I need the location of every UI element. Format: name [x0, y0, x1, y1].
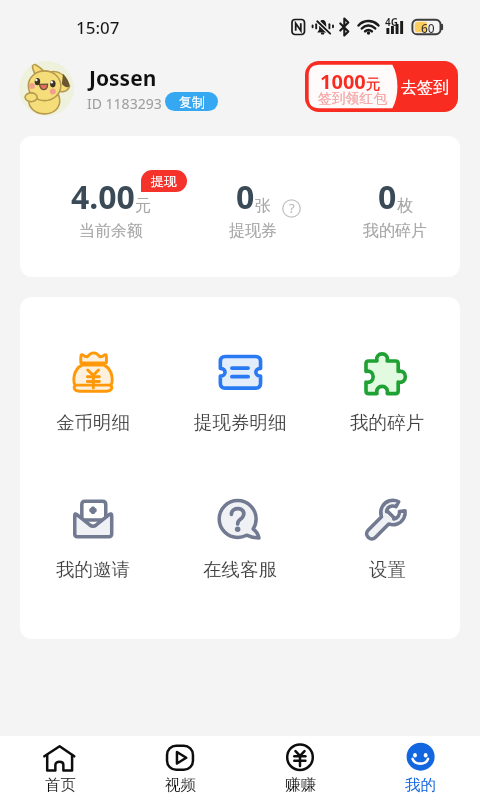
button[interactable]: 0	[229, 175, 277, 241]
staticText: 元	[366, 76, 380, 94]
button[interactable]: 视频	[120, 736, 240, 800]
button[interactable]: 我的碎片	[327, 346, 447, 434]
button[interactable]: 我的	[360, 736, 480, 800]
staticText: 元	[135, 196, 151, 216]
button[interactable]: 提现券明细	[180, 346, 300, 434]
button[interactable]: 金币明细	[33, 346, 153, 434]
button[interactable]: 复制	[165, 92, 218, 111]
staticText: 我的邀请	[56, 558, 130, 581]
staticText: 提现	[151, 173, 177, 189]
staticText: 金币明细	[56, 411, 130, 434]
staticText: 签到领红包	[318, 90, 387, 107]
staticText: 我的	[405, 775, 436, 795]
staticText: 视频	[165, 775, 196, 795]
staticText: 赚赚	[285, 775, 316, 795]
staticText: 提现券明细	[194, 411, 287, 434]
staticText: 在线客服	[203, 558, 277, 581]
staticText: 4.00	[71, 175, 135, 219]
staticText: 4G	[385, 15, 398, 29]
staticText: 1000	[320, 68, 366, 95]
staticText: 当前余额	[79, 221, 143, 241]
staticText: 60	[421, 20, 435, 36]
staticText: 复制	[179, 94, 205, 110]
button[interactable]: 4.00	[71, 175, 151, 241]
button[interactable]: 0	[363, 175, 427, 241]
staticText: 设置	[369, 558, 406, 581]
button[interactable]: 赚赚	[240, 736, 360, 800]
button[interactable]: Profile avatar	[19, 61, 74, 116]
staticText: 我的碎片	[350, 411, 424, 434]
staticText: 提现券	[229, 221, 277, 241]
staticText: 0	[378, 175, 397, 219]
staticText: 首页	[45, 775, 76, 795]
staticText: ?	[289, 199, 295, 217]
staticText: ID 1183293	[87, 94, 162, 113]
button[interactable]: 设置	[327, 493, 447, 581]
button[interactable]: 提现	[141, 170, 187, 192]
button[interactable]: 1000	[305, 61, 458, 112]
staticText: Jossen	[89, 64, 157, 93]
staticText: 我的碎片	[363, 221, 427, 241]
staticText: 0	[236, 175, 255, 219]
staticText: 枚	[397, 196, 413, 216]
button[interactable]: Help	[282, 199, 301, 218]
button[interactable]: 我的邀请	[33, 493, 153, 581]
button[interactable]: 首页	[0, 736, 120, 800]
staticText: 张	[255, 196, 271, 216]
button[interactable]: 在线客服	[180, 493, 300, 581]
staticText: 去签到	[401, 78, 449, 98]
staticText: 15:07	[76, 16, 120, 39]
